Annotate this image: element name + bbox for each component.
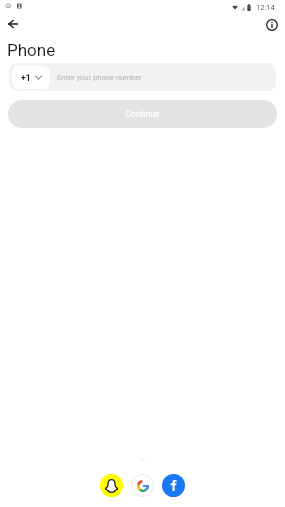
button[interactable]: Back [2, 13, 24, 35]
button[interactable]: Sign in with Google [131, 474, 154, 497]
staticText: Continue [125, 109, 160, 119]
button[interactable]: Continue [8, 100, 277, 128]
staticText: Phone [7, 40, 56, 60]
button[interactable]: Select country code [12, 66, 50, 89]
staticText: Enter your phone number [57, 73, 142, 82]
staticText: 12:14 [256, 3, 275, 12]
button[interactable]: Info [261, 14, 283, 36]
staticText: or [139, 455, 146, 463]
button[interactable]: Sign in with Snapchat [100, 474, 123, 497]
staticText: +1 [21, 73, 31, 83]
button[interactable]: Sign in with Facebook [162, 474, 185, 497]
